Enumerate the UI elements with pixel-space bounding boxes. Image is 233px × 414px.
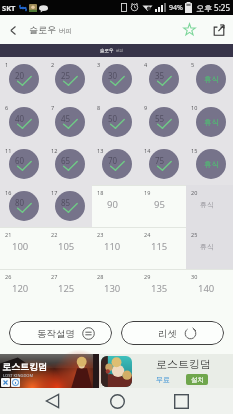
button[interactable]: 27 [46, 269, 92, 311]
button[interactable]: 9 [139, 100, 186, 143]
staticText: 휴식 [204, 118, 219, 127]
staticText: 14 [144, 147, 151, 154]
staticText: 18 [97, 189, 104, 196]
button[interactable]: 26 [0, 269, 46, 311]
staticText: 80 [15, 197, 25, 208]
staticText: SKT [2, 3, 16, 13]
button[interactable]: 20 [186, 185, 233, 227]
staticText: 7 [51, 104, 55, 111]
button[interactable]: 2 [46, 57, 92, 100]
button[interactable]: 16 [0, 185, 46, 227]
button[interactable]: 22 [46, 227, 92, 269]
staticText: 무료 [156, 375, 170, 384]
button[interactable]: 11 [0, 143, 46, 185]
staticText: 22 [51, 231, 58, 238]
staticText: 13 [97, 147, 104, 154]
staticText: 94% [169, 3, 183, 13]
staticText: 75 [155, 155, 165, 166]
button[interactable]: Favorite [175, 15, 204, 44]
staticText: 19 [144, 189, 151, 196]
staticText: 15 [191, 147, 198, 154]
staticText: 20 [191, 189, 198, 196]
staticText: 25 [61, 70, 71, 81]
staticText: 30 [108, 70, 118, 81]
staticText: 슬로우 [100, 48, 114, 54]
button[interactable]: 24 [139, 227, 186, 269]
button[interactable]: Share [204, 15, 233, 44]
staticText: 버피 [59, 27, 72, 35]
button[interactable]: 6 [0, 100, 46, 143]
staticText: 135 [151, 282, 168, 295]
button[interactable]: 설치 [186, 374, 208, 385]
staticText: 60 [15, 155, 25, 166]
button[interactable]: 19 [139, 185, 186, 227]
staticText: 슬로우 [29, 24, 56, 35]
button[interactable]: 25 [186, 227, 233, 269]
staticText: 115 [151, 240, 168, 253]
button[interactable]: 3 [92, 57, 139, 100]
staticText: 휴식 [200, 242, 214, 251]
staticText: 105 [58, 240, 75, 253]
button[interactable]: 12 [46, 143, 92, 185]
staticText: 11 [5, 147, 12, 154]
staticText: 9 [144, 104, 148, 111]
button[interactable]: Back [39, 388, 65, 414]
button[interactable]: 7 [46, 100, 92, 143]
staticText: 40 [15, 113, 25, 124]
staticText: 120 [12, 282, 29, 295]
staticText: 로스트킹덤 [2, 361, 47, 372]
staticText: 50 [108, 113, 118, 124]
button[interactable]: Recents [168, 388, 194, 414]
staticText: 100 [12, 240, 29, 253]
staticText: 23 [97, 231, 104, 238]
staticText: 8 [97, 104, 101, 111]
staticText: 95 [154, 198, 165, 211]
staticText: 16 [5, 189, 12, 196]
button[interactable]: 리셋 [121, 321, 224, 345]
button[interactable]: 동작설명 [9, 321, 112, 345]
staticText: 130 [104, 282, 121, 295]
staticText: 45 [61, 113, 71, 124]
button[interactable]: 8 [92, 100, 139, 143]
staticText: 1 [5, 61, 9, 68]
staticText: 85 [61, 197, 71, 208]
staticText: 35 [155, 70, 165, 81]
staticText: 20 [15, 70, 25, 81]
button[interactable]: 1 [0, 57, 46, 100]
staticText: 휴식 [200, 200, 214, 209]
staticText: 3 [97, 61, 101, 68]
staticText: 버피 [116, 49, 124, 54]
staticText: 125 [58, 282, 75, 295]
button[interactable]: 17 [46, 185, 92, 227]
staticText: 4 [144, 61, 148, 68]
staticText: 70 [108, 155, 118, 166]
staticText: 24 [144, 231, 151, 238]
staticText: 10 [191, 104, 198, 111]
staticText: 휴식 [204, 75, 219, 84]
button[interactable]: 14 [139, 143, 186, 185]
button[interactable]: 10 [186, 100, 233, 143]
button[interactable]: 15 [186, 143, 233, 185]
button[interactable]: 29 [139, 269, 186, 311]
button[interactable]: 21 [0, 227, 46, 269]
staticText: 29 [144, 273, 151, 280]
staticText: 6 [5, 104, 9, 111]
button[interactable]: 28 [92, 269, 139, 311]
staticText: 휴식 [204, 160, 219, 169]
button[interactable]: Back [0, 17, 26, 43]
staticText: 오후 5:25 [196, 2, 230, 13]
staticText: 110 [104, 240, 121, 253]
button[interactable]: 13 [92, 143, 139, 185]
staticText: 5 [191, 61, 195, 68]
button[interactable]: Home [104, 388, 130, 414]
button[interactable]: 5 [186, 57, 233, 100]
staticText: 2 [51, 61, 55, 68]
button[interactable]: 23 [92, 227, 139, 269]
staticText: LOST KINGDOM [3, 373, 34, 378]
button[interactable]: 로스트킹덤 [0, 354, 233, 388]
button[interactable]: 30 [186, 269, 233, 311]
button[interactable]: 4 [139, 57, 186, 100]
staticText: 동작설명 [37, 328, 75, 340]
button[interactable]: 18 [92, 185, 139, 227]
staticText: 90 [107, 198, 118, 211]
